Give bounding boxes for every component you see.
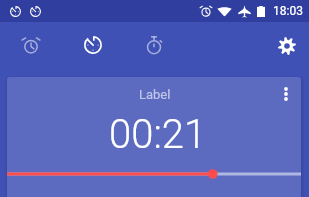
staticText: 18:03 (273, 4, 303, 18)
button[interactable]: Settings (265, 24, 309, 68)
staticText: Label (139, 87, 171, 102)
button[interactable]: Stopwatch (124, 23, 184, 67)
button[interactable]: Alarm (1, 23, 61, 67)
button[interactable]: Timer (63, 23, 123, 67)
staticText: 00:21 (109, 111, 207, 158)
button[interactable]: More options (271, 78, 301, 110)
